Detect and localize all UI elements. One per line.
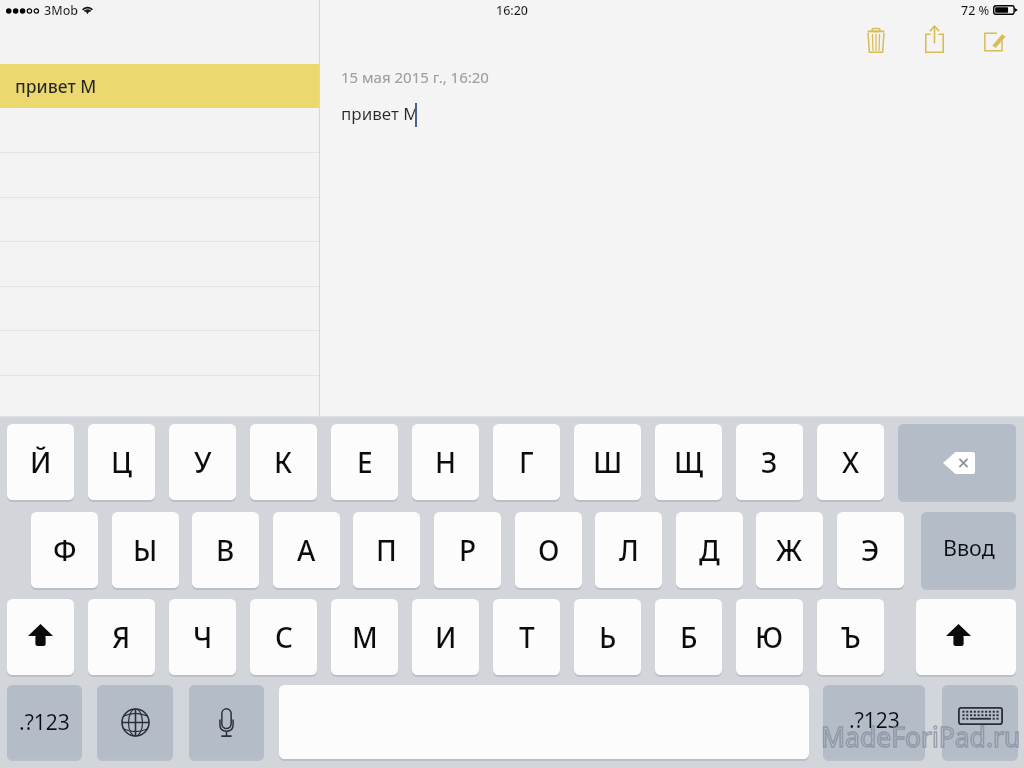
- staticText: 16:20: [496, 2, 529, 19]
- staticText: Ю: [755, 618, 784, 656]
- button[interactable]: В: [192, 512, 259, 588]
- button[interactable]: П: [353, 512, 420, 588]
- button[interactable]: Ф: [31, 512, 98, 588]
- staticText: И: [435, 618, 457, 656]
- staticText: Ф: [53, 531, 77, 569]
- button[interactable]: .?123: [823, 685, 925, 759]
- button[interactable]: И: [412, 599, 479, 675]
- button[interactable]: Л: [595, 512, 662, 588]
- button[interactable]: Й: [7, 424, 74, 500]
- button[interactable]: [0, 286, 320, 331]
- staticText: Э: [861, 531, 880, 569]
- button[interactable]: О: [515, 512, 582, 588]
- staticText: Х: [842, 443, 860, 481]
- staticText: О: [538, 531, 560, 569]
- button[interactable]: Shift: [916, 599, 1016, 675]
- staticText: Т: [519, 618, 535, 656]
- button[interactable]: Я: [88, 599, 155, 675]
- button[interactable]: Hide keyboard: [942, 685, 1018, 759]
- staticText: Р: [459, 531, 477, 569]
- staticText: П: [376, 531, 397, 569]
- button[interactable]: Next keyboard: [97, 685, 173, 759]
- button[interactable]: У: [169, 424, 236, 500]
- button[interactable]: Х: [817, 424, 884, 500]
- staticText: привет М: [341, 102, 419, 125]
- button[interactable]: Д: [676, 512, 743, 588]
- staticText: Е: [357, 443, 373, 481]
- staticText: Ш: [593, 443, 623, 481]
- button[interactable]: Delete: [857, 21, 895, 59]
- button[interactable]: [0, 197, 320, 242]
- button[interactable]: Ж: [756, 512, 823, 588]
- staticText: Ы: [133, 531, 158, 569]
- staticText: Ч: [193, 618, 213, 656]
- staticText: Д: [699, 531, 720, 569]
- staticText: З: [761, 443, 778, 481]
- staticText: Н: [435, 443, 457, 481]
- button[interactable]: Б: [655, 599, 722, 675]
- button[interactable]: Е: [331, 424, 398, 500]
- button[interactable]: Ц: [88, 424, 155, 500]
- button[interactable]: Dictation: [189, 685, 264, 759]
- staticText: Й: [30, 443, 52, 481]
- staticText: привет М: [15, 74, 97, 98]
- button[interactable]: Ь: [574, 599, 641, 675]
- button[interactable]: Т: [493, 599, 560, 675]
- button[interactable]: привет М: [0, 64, 320, 108]
- staticText: Ъ: [841, 618, 861, 656]
- staticText: .?123: [19, 708, 70, 737]
- button[interactable]: Ъ: [817, 599, 884, 675]
- button[interactable]: Ввод: [921, 512, 1016, 588]
- staticText: Ж: [776, 531, 803, 569]
- button[interactable]: Backspace: [898, 424, 1016, 500]
- staticText: MadeForiPad.ru: [821, 719, 1021, 755]
- staticText: 72 %: [961, 2, 990, 19]
- button[interactable]: А: [273, 512, 340, 588]
- staticText: Ввод: [943, 533, 995, 562]
- staticText: Ь: [599, 618, 617, 656]
- staticText: С: [275, 618, 293, 656]
- staticText: В: [216, 531, 235, 569]
- staticText: 3Mob: [44, 2, 79, 19]
- staticText: Г: [519, 443, 534, 481]
- button[interactable]: Н: [412, 424, 479, 500]
- staticText: К: [274, 443, 293, 481]
- button[interactable]: Share: [915, 20, 953, 58]
- button[interactable]: Э: [837, 512, 904, 588]
- button[interactable]: К: [250, 424, 317, 500]
- button[interactable]: Ч: [169, 599, 236, 675]
- staticText: У: [194, 443, 212, 481]
- button[interactable]: Ю: [736, 599, 803, 675]
- button[interactable]: М: [331, 599, 398, 675]
- button[interactable]: Щ: [655, 424, 722, 500]
- button[interactable]: Р: [434, 512, 501, 588]
- staticText: 15 мая 2015 г., 16:20: [341, 67, 489, 87]
- staticText: Щ: [674, 443, 704, 481]
- staticText: Л: [619, 531, 639, 569]
- button[interactable]: Ш: [574, 424, 641, 500]
- button[interactable]: .?123: [7, 685, 82, 759]
- button[interactable]: Shift: [7, 599, 74, 675]
- staticText: А: [297, 531, 316, 569]
- button[interactable]: Г: [493, 424, 560, 500]
- button[interactable]: New note: [975, 23, 1013, 61]
- button[interactable]: З: [736, 424, 803, 500]
- staticText: .?123: [849, 706, 900, 735]
- staticText: Ц: [111, 443, 133, 481]
- staticText: М: [352, 618, 378, 656]
- staticText: Б: [680, 618, 698, 656]
- button[interactable]: С: [250, 599, 317, 675]
- staticText: Я: [112, 618, 131, 656]
- button[interactable]: Ы: [112, 512, 179, 588]
